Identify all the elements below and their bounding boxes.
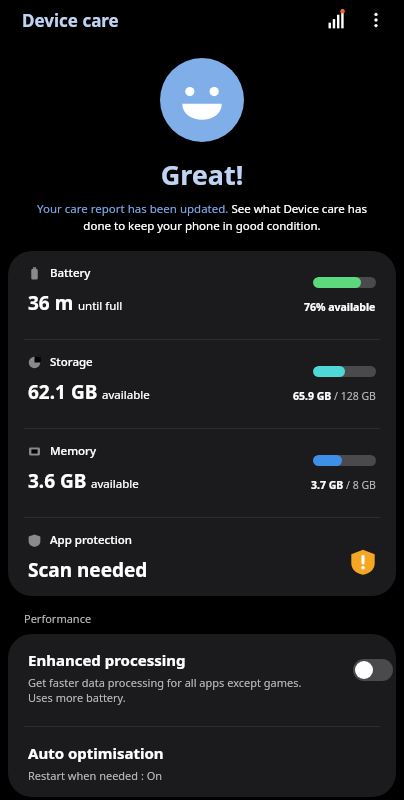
staticText: 65.9 GB / 128 GB <box>293 389 376 403</box>
staticText: Scan needed <box>28 557 148 583</box>
staticText: Get faster data processing for all apps … <box>28 675 316 705</box>
staticText: Battery <box>50 265 91 281</box>
button[interactable]: Storage <box>8 340 396 428</box>
staticText: 3.7 GB / 8 GB <box>311 478 376 492</box>
staticText: Great! <box>0 156 404 193</box>
button[interactable]: Usage statistics <box>316 0 356 40</box>
staticText: Restart when needed : On <box>28 768 163 783</box>
button[interactable]: App protection <box>8 518 396 596</box>
button[interactable]: Auto optimisation <box>8 727 396 797</box>
staticText: Your care report has been updated. See w… <box>22 201 382 233</box>
staticText: 76% available <box>304 300 376 314</box>
button[interactable]: More options <box>356 0 396 40</box>
staticText: Storage <box>50 354 93 370</box>
button[interactable]: Memory <box>8 429 396 517</box>
staticText: available <box>91 476 139 492</box>
button[interactable]: Enhanced processing toggle <box>353 659 393 681</box>
staticText: until full <box>78 298 123 314</box>
staticText: Performance <box>24 611 92 626</box>
staticText: 3.6 GB <box>28 468 87 494</box>
staticText: Enhanced processing <box>28 650 186 670</box>
staticText: 36 m <box>28 290 74 316</box>
staticText: App protection <box>50 532 132 548</box>
button[interactable]: Battery <box>8 251 396 339</box>
staticText: Auto optimisation <box>28 743 164 763</box>
staticText: 62.1 GB <box>28 379 98 405</box>
staticText: Device care <box>22 9 119 32</box>
staticText: Memory <box>50 443 97 459</box>
button[interactable]: Enhanced processing <box>8 634 396 726</box>
staticText: available <box>102 387 150 403</box>
